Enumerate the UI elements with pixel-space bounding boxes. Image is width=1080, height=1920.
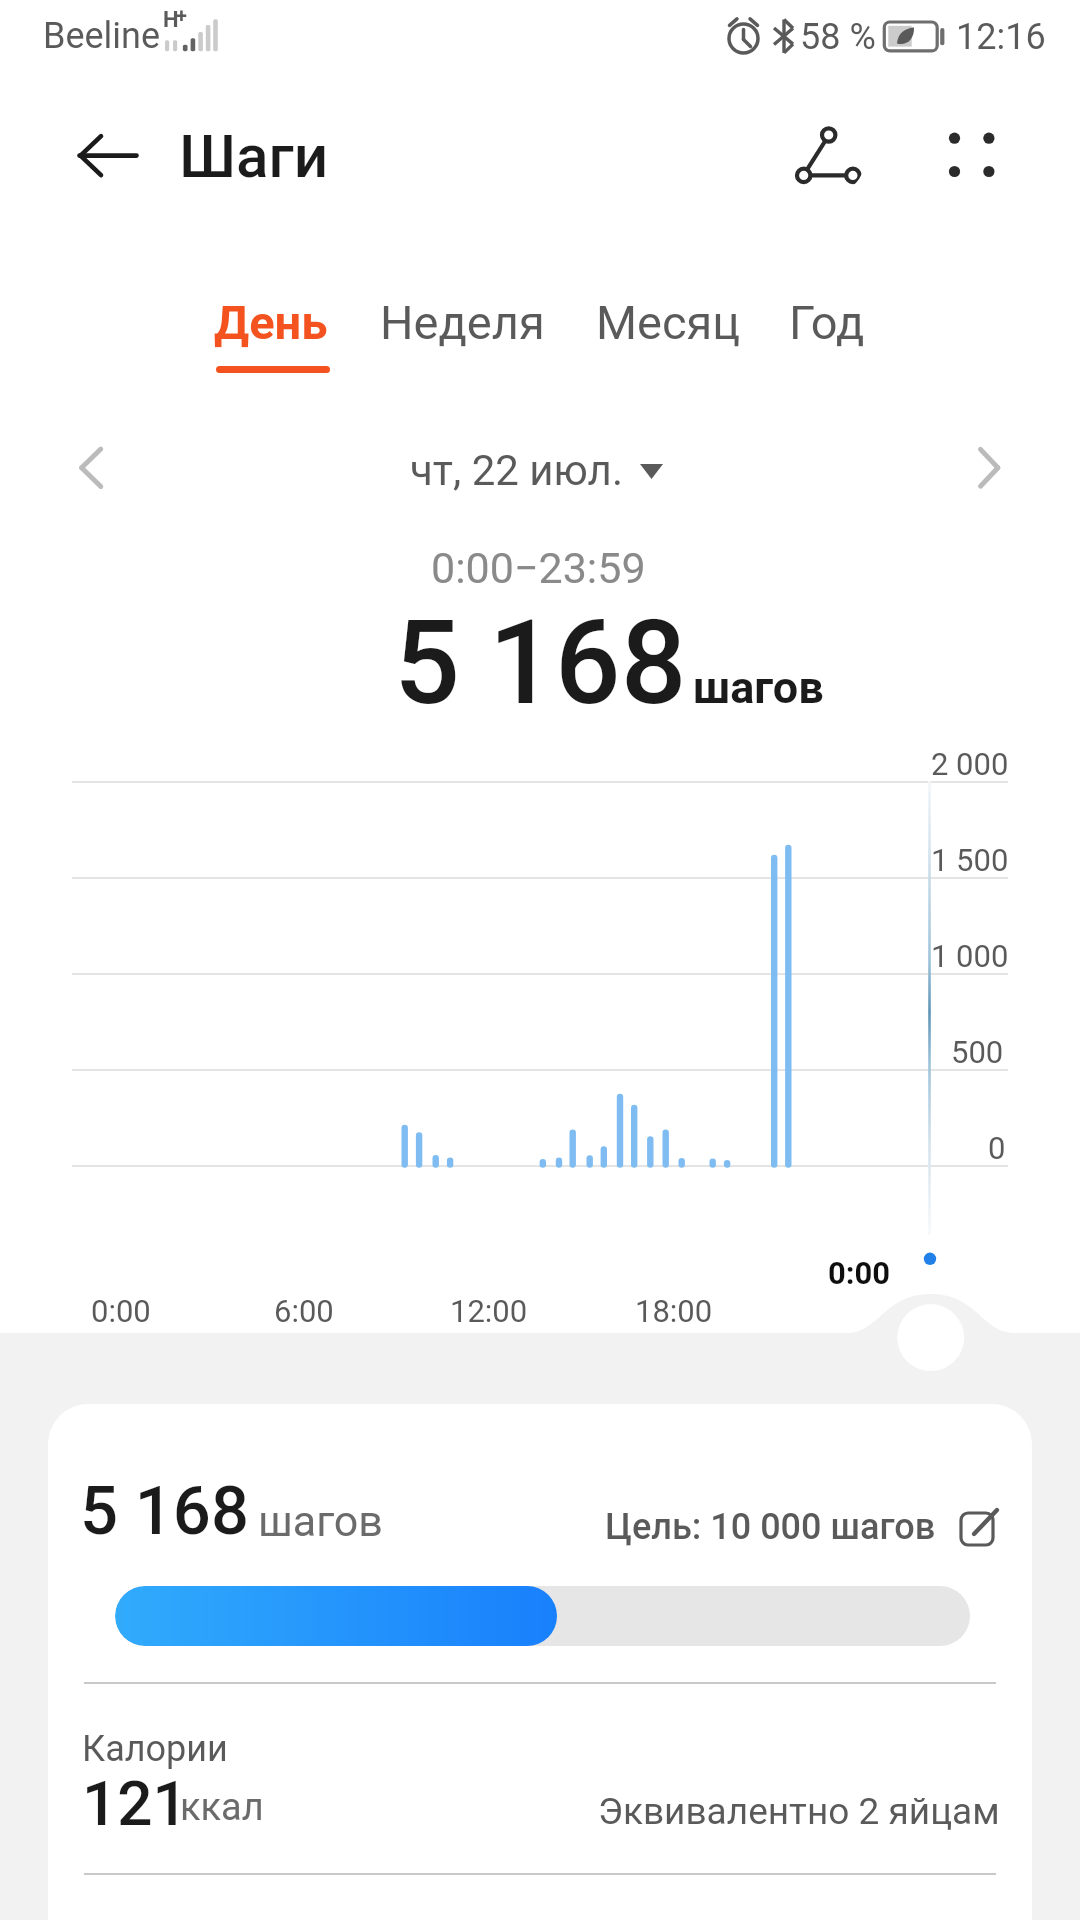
button[interactable]: Неделя [354,288,569,384]
button[interactable]: Previous day [50,426,134,510]
staticText: 18:00 [635,1293,713,1329]
staticText: 0:00−23:59 [431,543,646,593]
button[interactable]: More options [930,112,1014,196]
button[interactable]: Share [782,114,866,198]
staticText: 12:00 [450,1293,528,1329]
staticText: Год [789,295,865,350]
staticText: Неделя [380,295,545,350]
staticText: 6:00 [274,1293,334,1329]
staticText: 121 [82,1767,188,1840]
staticText: ккал [180,1785,264,1830]
staticText: 12:16 [956,16,1046,58]
staticText: 58 % [800,16,876,58]
staticText: 0:00 [91,1293,151,1329]
staticText: 1 000 [931,938,1009,974]
button[interactable]: чт, 22 июл. [384,434,684,506]
staticText: Эквивалентно 2 яйцам [598,1790,1000,1833]
button[interactable]: Back [62,111,152,201]
staticText: 2 000 [931,746,1009,782]
staticText: H [163,7,179,33]
staticText: + [176,3,187,26]
staticText: Месяц [596,295,741,350]
staticText: День [214,295,328,350]
staticText: Цель: 10 000 шагов [605,1506,936,1548]
staticText: шагов [258,1496,383,1546]
button[interactable]: Месяц [570,288,771,384]
staticText: 5 168 [394,595,687,731]
button[interactable]: День [188,288,358,384]
button[interactable]: Год [763,288,895,384]
staticText: Калории [82,1728,228,1770]
staticText: 1 500 [931,842,1009,878]
staticText: 0:00 [828,1255,891,1291]
staticText: шагов [693,661,824,714]
staticText: 500 [951,1034,1004,1070]
button[interactable]: Next day [950,426,1034,510]
button[interactable]: Цель: 10 000 шагов [596,1495,1008,1557]
staticText: чт, 22 июл. [410,446,623,495]
staticText: 5 168 [80,1472,250,1551]
staticText: 0 [988,1130,1006,1166]
staticText: Шаги [179,121,329,191]
staticText: Beeline [43,15,161,57]
